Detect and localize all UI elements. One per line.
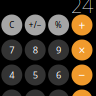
button[interactable]: 2: [25, 89, 46, 96]
button[interactable]: ×: [71, 39, 92, 60]
button[interactable]: 4: [1, 64, 22, 85]
staticText: %: [55, 20, 62, 30]
staticText: 4: [9, 69, 14, 81]
button[interactable]: 6: [48, 64, 69, 85]
button[interactable]: %: [48, 14, 69, 35]
button[interactable]: +: [71, 14, 92, 35]
staticText: −: [78, 67, 85, 83]
button[interactable]: 1: [1, 89, 22, 96]
staticText: ×: [78, 42, 85, 58]
staticText: +/−: [29, 20, 42, 30]
staticText: C: [9, 20, 14, 30]
staticText: 8: [33, 44, 38, 56]
button[interactable]: 3: [48, 89, 69, 96]
button[interactable]: 9: [48, 39, 69, 60]
staticText: 7: [9, 44, 14, 56]
button[interactable]: −: [71, 64, 92, 85]
button[interactable]: 8: [25, 39, 46, 60]
button[interactable]: C: [1, 14, 22, 35]
staticText: 5: [33, 69, 38, 81]
staticText: 6: [56, 69, 61, 81]
staticText: +: [78, 17, 85, 33]
button[interactable]: 7: [1, 39, 22, 60]
staticText: 24: [71, 0, 93, 19]
button[interactable]: +/−: [25, 14, 46, 35]
button[interactable]: +: [71, 89, 92, 96]
staticText: 9: [56, 44, 61, 56]
button[interactable]: 5: [25, 64, 46, 85]
